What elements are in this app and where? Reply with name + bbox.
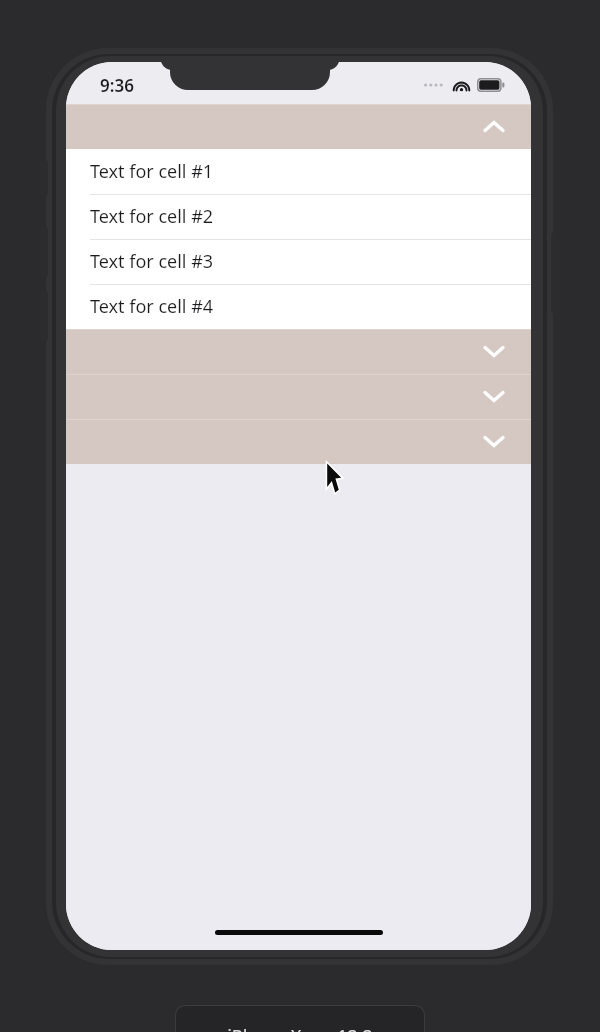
button[interactable]: Text for cell #4 <box>66 284 531 329</box>
staticText: 9:36 <box>100 74 134 97</box>
staticText: Text for cell #2 <box>90 204 214 229</box>
button[interactable]: Text for cell #1 <box>66 149 531 194</box>
staticText: Text for cell #1 <box>90 159 214 184</box>
button[interactable]: Expand section 4 <box>66 419 531 464</box>
button[interactable]: Text for cell #2 <box>66 194 531 239</box>
button[interactable]: Expand section 3 <box>66 374 531 419</box>
staticText: iPhone Xs — 12.2 <box>227 1024 373 1032</box>
button[interactable]: Text for cell #3 <box>66 239 531 284</box>
staticText: Text for cell #4 <box>90 294 214 319</box>
button[interactable]: Collapse section 1 <box>66 104 531 149</box>
staticText: Text for cell #3 <box>90 249 214 274</box>
button[interactable]: Expand section 2 <box>66 329 531 374</box>
